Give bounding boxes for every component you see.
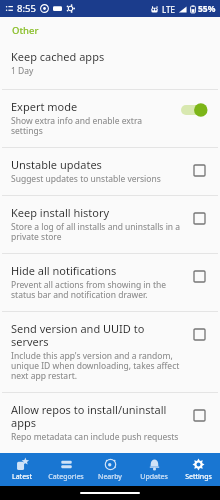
button[interactable]: Checkbox, unchecked: [190, 209, 208, 227]
staticText: Repo metadata can include push requests …: [11, 431, 184, 443]
button[interactable]: Latest: [0, 453, 44, 486]
button[interactable]: Allow repos to install/uninstall apps: [0, 393, 220, 453]
button[interactable]: Expert mode toggle: [180, 102, 208, 118]
staticText: Keep cached apps: [11, 49, 105, 64]
button[interactable]: Nearby: [88, 453, 132, 486]
staticText: 1 Day: [11, 65, 34, 77]
staticText: Latest: [12, 472, 32, 482]
staticText: Settings: [185, 472, 212, 482]
button[interactable]: Keep cached apps: [0, 39, 220, 89]
button[interactable]: Checkbox, unchecked: [190, 325, 208, 343]
staticText: Include this app's version and a random,…: [11, 350, 184, 382]
staticText: 55%: [198, 3, 216, 15]
button[interactable]: Updates: [132, 453, 176, 486]
button[interactable]: Unstable updates: [0, 148, 220, 195]
button[interactable]: Categories: [44, 453, 88, 486]
button[interactable]: Hide all notifications: [0, 254, 220, 311]
staticText: Store a log of all installs and uninstal…: [11, 221, 184, 243]
staticText: Allow repos to install/uninstall apps: [11, 402, 184, 430]
staticText: 8:55: [17, 2, 36, 15]
button[interactable]: Checkbox, unchecked: [190, 267, 208, 285]
staticText: Other: [12, 24, 39, 37]
staticText: Categories: [48, 472, 84, 482]
staticText: Suggest updates to unstable versions: [11, 173, 161, 185]
button[interactable]: Checkbox, unchecked: [190, 161, 208, 179]
button[interactable]: Keep install history: [0, 196, 220, 253]
staticText: Keep install history: [11, 205, 110, 220]
staticText: Nearby: [98, 472, 122, 482]
staticText: Updates: [140, 472, 168, 482]
staticText: Hide all notifications: [11, 263, 117, 278]
staticText: Send version and UUID to servers: [11, 321, 184, 349]
button[interactable]: Settings: [176, 453, 220, 486]
button[interactable]: Send version and UUID to servers: [0, 312, 220, 392]
button[interactable]: Expert mode: [0, 90, 220, 147]
staticText: Expert mode: [11, 99, 78, 114]
staticText: Unstable updates: [11, 157, 102, 172]
staticText: Prevent all actions from showing in the …: [11, 279, 184, 301]
staticText: LTE: [162, 4, 175, 15]
button[interactable]: Checkbox, unchecked: [190, 406, 208, 424]
staticText: Show extra info and enable extra setting…: [11, 115, 174, 137]
